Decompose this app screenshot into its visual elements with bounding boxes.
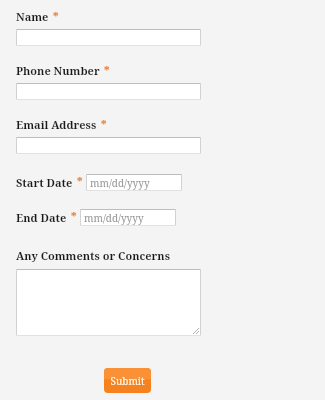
button[interactable] — [16, 269, 201, 336]
button[interactable] — [16, 83, 201, 100]
staticText: Name — [16, 9, 49, 24]
button[interactable] — [16, 29, 201, 46]
button[interactable]: mm/dd/yyyy — [80, 209, 176, 226]
staticText: Any Comments or Concerns — [16, 248, 170, 263]
staticText: Email Address — [16, 117, 97, 132]
staticText: * — [104, 62, 110, 77]
button[interactable]: mm/dd/yyyy — [86, 174, 182, 191]
staticText: Phone Number — [16, 63, 100, 78]
staticText: * — [101, 116, 107, 131]
staticText: End Date — [16, 210, 67, 225]
button[interactable]: Submit — [104, 368, 151, 393]
staticText: * — [71, 208, 77, 223]
staticText: * — [53, 8, 59, 23]
staticText: Submit — [110, 374, 145, 388]
staticText: Start Date — [16, 175, 73, 190]
staticText: mm/dd/yyyy — [84, 211, 144, 225]
button[interactable] — [16, 137, 201, 154]
staticText: * — [77, 173, 83, 188]
staticText: mm/dd/yyyy — [90, 176, 150, 190]
